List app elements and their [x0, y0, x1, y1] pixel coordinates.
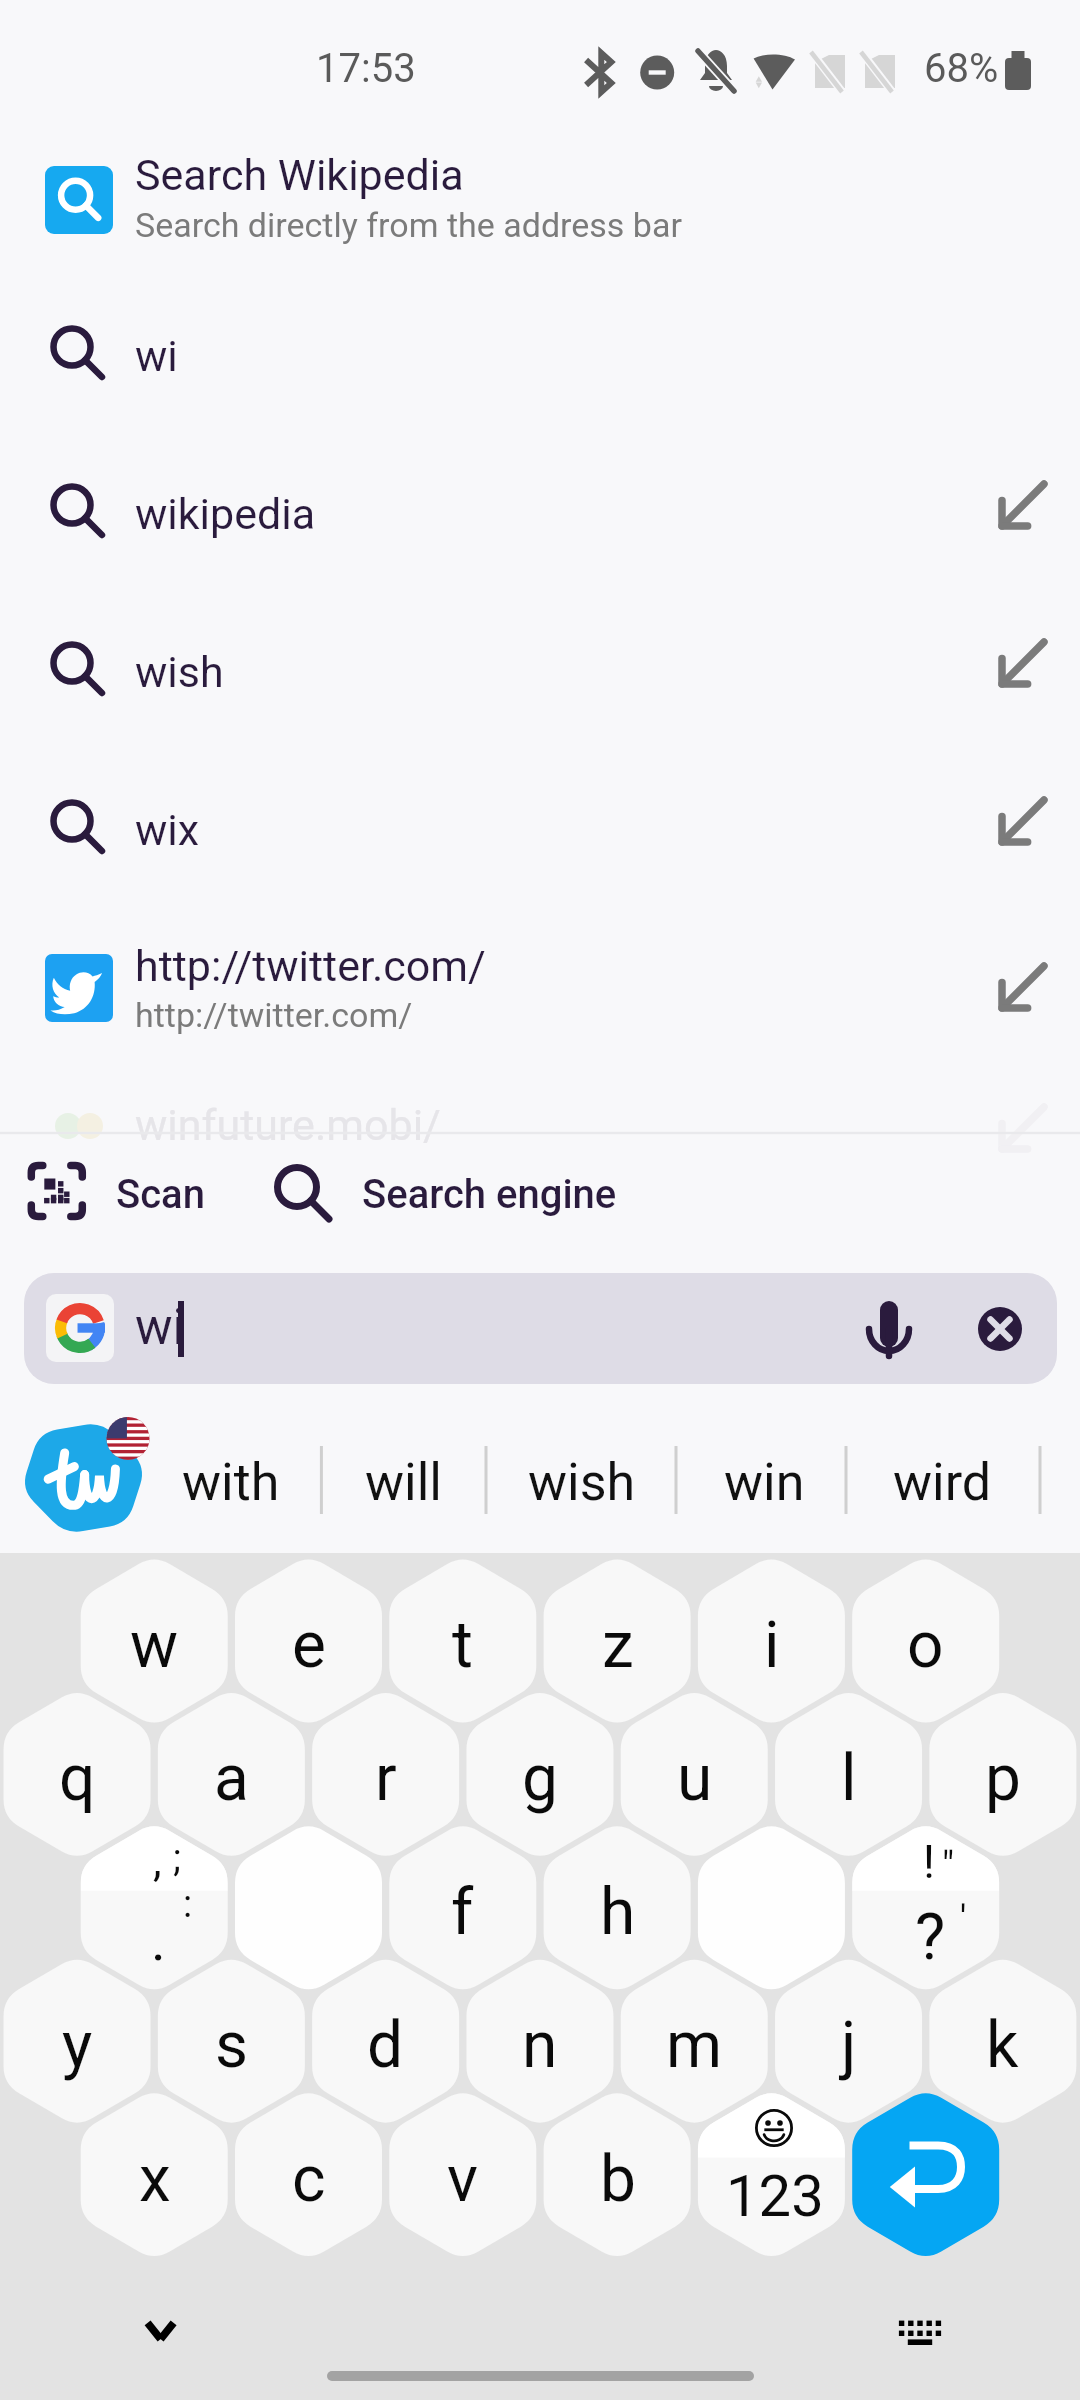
- button[interactable]: wi: [24, 1273, 1057, 1384]
- staticText: ,: [153, 1835, 162, 1887]
- button[interactable]: Switch keyboard: [890, 2305, 952, 2367]
- button[interactable]: wikipedia: [0, 434, 1080, 592]
- staticText: http://twitter.com/: [135, 995, 413, 1035]
- button[interactable]: wish: [497, 1410, 667, 1555]
- staticText: wi: [135, 1298, 185, 1357]
- button[interactable]: f: [389, 1826, 536, 1998]
- button[interactable]: e: [235, 1559, 382, 1731]
- staticText: ': [960, 1898, 967, 1940]
- button[interactable]: c: [235, 2093, 382, 2265]
- button[interactable]: wix: [0, 750, 1080, 908]
- button[interactable]: Search engine: [252, 1148, 646, 1240]
- staticText: j: [841, 2008, 857, 2083]
- button[interactable]: s: [158, 1959, 305, 2131]
- staticText: wi: [135, 331, 178, 381]
- button[interactable]: wird: [857, 1410, 1027, 1555]
- button[interactable]: q: [4, 1692, 151, 1864]
- staticText: .: [151, 1908, 166, 1974]
- staticText: b: [600, 2142, 636, 2217]
- staticText: g: [522, 1741, 558, 1816]
- button[interactable]: z: [544, 1559, 691, 1731]
- button[interactable]: v: [389, 2093, 536, 2265]
- button[interactable]: Scan: [6, 1148, 224, 1240]
- button[interactable]: with: [146, 1410, 316, 1555]
- button[interactable]: x: [81, 2093, 228, 2265]
- staticText: http://twitter.com/: [135, 941, 486, 991]
- staticText: h: [600, 1875, 636, 1950]
- staticText: z: [602, 1608, 634, 1683]
- staticText: o: [907, 1608, 944, 1683]
- button[interactable]: d: [312, 1959, 459, 2131]
- button[interactable]: !: [852, 1822, 999, 1994]
- button[interactable]: Enter: [852, 2089, 999, 2261]
- button[interactable]: win: [679, 1410, 849, 1555]
- button[interactable]: k: [929, 1959, 1076, 2131]
- staticText: wird: [893, 1452, 992, 1513]
- staticText: e: [292, 1608, 326, 1683]
- staticText: a: [214, 1741, 249, 1816]
- button[interactable]: will: [319, 1410, 489, 1555]
- staticText: r: [375, 1741, 397, 1816]
- button[interactable]: winfuture.mobi/: [0, 1066, 1080, 1133]
- button[interactable]: Search Wikipedia: [0, 128, 1080, 276]
- staticText: 68%: [924, 45, 999, 92]
- staticText: winfuture.mobi/: [135, 1100, 441, 1150]
- staticText: win: [724, 1452, 805, 1513]
- button[interactable]: p: [929, 1692, 1076, 1864]
- button[interactable]: t: [389, 1559, 536, 1731]
- staticText: Search directly from the address bar: [135, 205, 682, 245]
- staticText: wish: [135, 647, 224, 697]
- button[interactable]: Hide keyboard: [130, 2305, 192, 2367]
- button[interactable]: i: [698, 1559, 845, 1731]
- staticText: n: [522, 2008, 558, 2083]
- staticText: wish: [528, 1452, 636, 1513]
- button[interactable]: u: [621, 1692, 768, 1864]
- staticText: w: [130, 1608, 179, 1683]
- button[interactable]: a: [158, 1692, 305, 1864]
- staticText: Scan: [116, 1171, 205, 1218]
- staticText: 17:53: [316, 45, 416, 92]
- staticText: x: [139, 2142, 171, 2217]
- staticText: ;: [173, 1836, 182, 1881]
- button[interactable]: g: [466, 1692, 613, 1864]
- staticText: Search Wikipedia: [135, 150, 464, 200]
- staticText: i: [764, 1608, 780, 1683]
- staticText: with: [182, 1452, 280, 1513]
- staticText: p: [985, 1741, 1021, 1816]
- staticText: k: [986, 2008, 1019, 2083]
- staticText: f: [451, 1875, 474, 1950]
- button[interactable]: l: [775, 1692, 922, 1864]
- staticText: ?: [915, 1900, 946, 1975]
- button[interactable]: 123: [698, 2089, 845, 2261]
- staticText: ": [942, 1844, 955, 1889]
- staticText: l: [841, 1741, 857, 1816]
- staticText: wix: [135, 805, 200, 855]
- staticText: wikipedia: [135, 489, 316, 539]
- button[interactable]: http://twitter.com/: [0, 908, 1080, 1066]
- staticText: c: [292, 2142, 326, 2217]
- staticText: v: [447, 2142, 478, 2217]
- button[interactable]: o: [852, 1559, 999, 1731]
- button[interactable]: wish: [0, 592, 1080, 750]
- button[interactable]: y: [4, 1959, 151, 2131]
- button[interactable]: h: [544, 1826, 691, 1998]
- button[interactable]: w: [81, 1559, 228, 1731]
- button[interactable]: b: [544, 2093, 691, 2265]
- button[interactable]: m: [621, 1959, 768, 2131]
- staticText: :: [183, 1882, 193, 1927]
- staticText: 123: [726, 2162, 824, 2230]
- staticText: will: [365, 1452, 443, 1513]
- staticText: !: [923, 1835, 935, 1889]
- staticText: u: [677, 1741, 713, 1816]
- button[interactable]: n: [466, 1959, 613, 2131]
- staticText: Search engine: [362, 1171, 617, 1218]
- button[interactable]: r: [312, 1692, 459, 1864]
- button[interactable]: j: [775, 1959, 922, 2131]
- staticText: s: [215, 2008, 249, 2083]
- staticText: t: [452, 1608, 473, 1683]
- button[interactable]: wi: [0, 276, 1080, 434]
- staticText: d: [367, 2008, 404, 2083]
- staticText: y: [62, 2008, 93, 2083]
- button[interactable]: ,: [81, 1822, 228, 1994]
- staticText: m: [666, 2008, 723, 2083]
